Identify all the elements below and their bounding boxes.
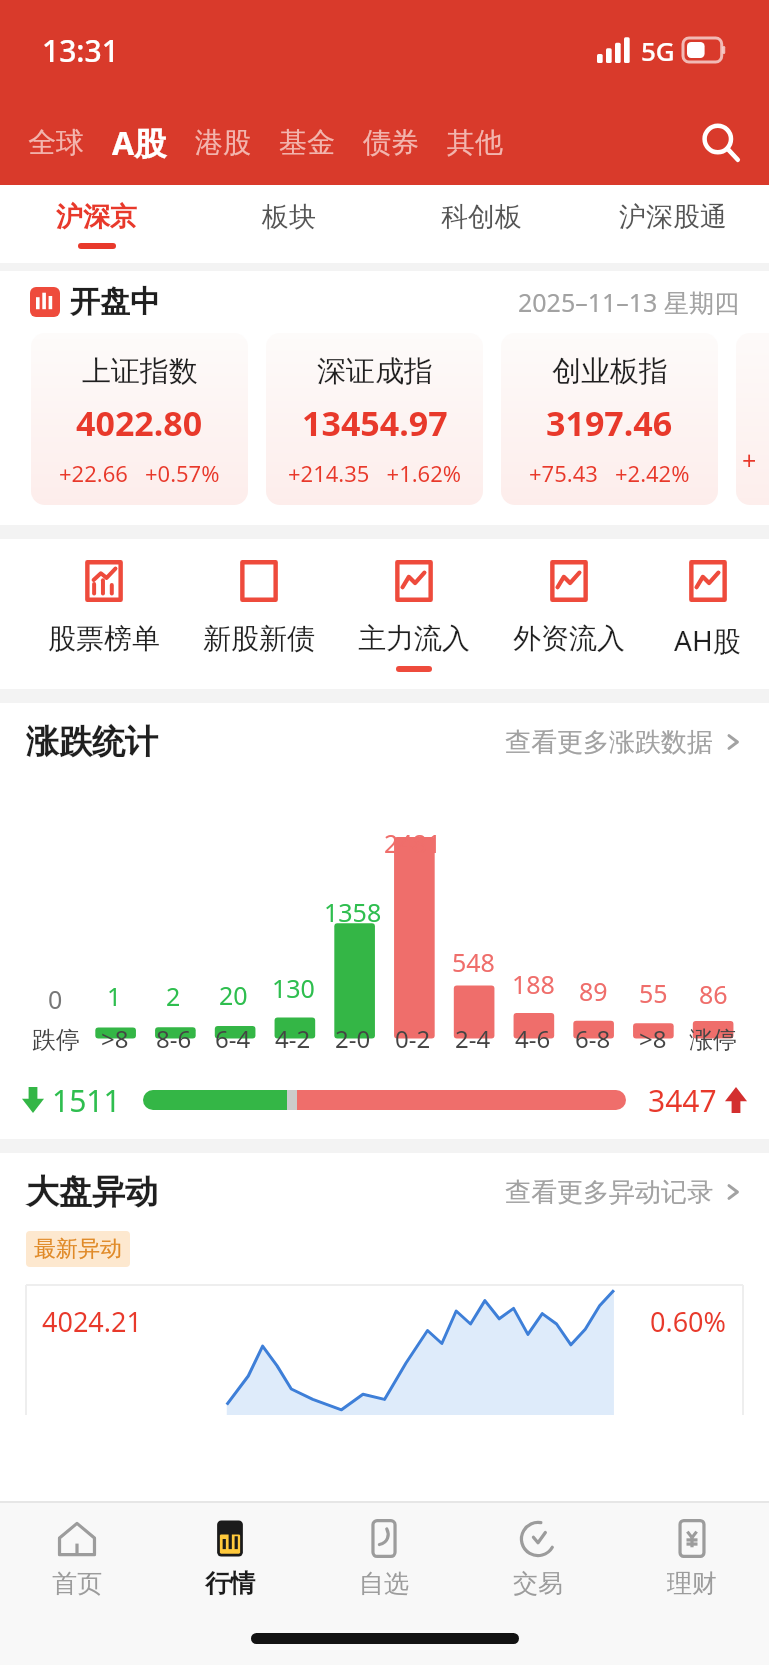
staticText: 4022.80 <box>76 400 203 446</box>
button[interactable]: 沪深股通 <box>577 185 769 263</box>
staticText: 130 <box>272 971 315 1005</box>
button[interactable]: 深证成指 <box>266 333 483 505</box>
staticText: 86 <box>699 977 728 1011</box>
button[interactable]: 科创板 <box>385 185 577 263</box>
staticText: 13:31 <box>42 30 119 71</box>
staticText: 4-2 <box>275 1022 311 1055</box>
staticText: 沪深股通 <box>619 200 727 234</box>
staticText: 外资流入 <box>513 621 625 656</box>
staticText: 查看更多异动记录 <box>505 1176 713 1209</box>
button[interactable]: 板块 <box>193 185 385 263</box>
staticText: 理财 <box>667 1568 717 1599</box>
button[interactable]: 自选 <box>307 1503 461 1611</box>
staticText: 1358 <box>324 895 382 929</box>
staticText: + <box>742 443 757 477</box>
staticText: +214.35 +1.62% <box>288 458 462 488</box>
staticText: 自选 <box>359 1568 409 1599</box>
button[interactable]: 上证指数 <box>31 333 248 505</box>
staticText: 板块 <box>262 200 316 234</box>
staticText: 4-6 <box>515 1022 551 1055</box>
staticText: 0 <box>48 982 63 1016</box>
button[interactable]: 行情 <box>153 1503 307 1611</box>
staticText: 基金 <box>279 125 335 160</box>
button[interactable]: 沪深京 <box>0 185 193 263</box>
staticText: 大盘异动 <box>26 1171 158 1213</box>
staticText: 跌停 <box>32 1025 80 1055</box>
staticText: 2-0 <box>335 1022 371 1055</box>
staticText: A股 <box>112 121 167 165</box>
button[interactable]: 主力流入 <box>336 555 491 672</box>
button[interactable]: 理财 <box>615 1503 769 1611</box>
staticText: 4024.21 <box>42 1303 142 1340</box>
button[interactable]: 港股 <box>181 119 265 166</box>
staticText: 债券 <box>363 125 419 160</box>
staticText: 创业板指 <box>552 353 668 390</box>
staticText: AH股 <box>674 621 741 659</box>
button[interactable]: 股票榜单 <box>26 555 181 656</box>
staticText: 0-2 <box>395 1022 431 1055</box>
button[interactable]: AH股 <box>646 555 769 659</box>
staticText: 交易 <box>513 1568 563 1599</box>
staticText: 2 <box>166 979 181 1013</box>
staticText: 首页 <box>52 1568 102 1599</box>
staticText: 其他 <box>447 125 503 160</box>
staticText: 55 <box>639 976 668 1010</box>
staticText: 上证指数 <box>82 353 198 390</box>
staticText: 2-4 <box>455 1022 491 1055</box>
button[interactable]: 大盘异动 <box>26 1153 743 1231</box>
staticText: 6-8 <box>575 1022 611 1055</box>
button[interactable]: 债券 <box>349 119 433 166</box>
button[interactable]: + <box>736 333 769 505</box>
button[interactable]: 创业板指 <box>501 333 718 505</box>
staticText: 主力流入 <box>358 621 470 656</box>
staticText: >8 <box>101 1022 129 1055</box>
staticText: +22.66 +0.57% <box>59 458 220 488</box>
staticText: 6-4 <box>215 1022 251 1055</box>
staticText: 1 <box>107 979 122 1013</box>
staticText: 最新异动 <box>34 1235 122 1263</box>
button[interactable]: 交易 <box>461 1503 615 1611</box>
button[interactable]: 首页 <box>0 1503 153 1611</box>
staticText: 89 <box>579 974 608 1008</box>
button[interactable]: 搜索 <box>693 115 749 171</box>
staticText: 13454.97 <box>302 400 448 446</box>
staticText: 188 <box>512 967 555 1001</box>
staticText: 深证成指 <box>317 353 433 390</box>
staticText: 0.60% <box>650 1303 727 1340</box>
staticText: 开盘中 <box>70 283 160 321</box>
staticText: 沪深京 <box>56 200 137 234</box>
staticText: 548 <box>452 945 495 979</box>
button[interactable]: 4024.21 <box>26 1285 743 1415</box>
staticText: >8 <box>639 1022 667 1055</box>
button[interactable]: 外资流入 <box>491 555 646 656</box>
staticText: 2481 <box>384 826 442 860</box>
button[interactable]: 涨跌统计 <box>26 703 743 781</box>
staticText: 20 <box>219 978 248 1012</box>
staticText: 新股新债 <box>203 621 315 656</box>
staticText: 2025–11–13 星期四 <box>518 285 739 319</box>
staticText: 涨跌统计 <box>26 721 158 763</box>
staticText: 股票榜单 <box>48 621 160 656</box>
staticText: 查看更多涨跌数据 <box>505 726 713 759</box>
button[interactable]: A股 <box>98 115 181 171</box>
button[interactable]: 全球 <box>14 119 98 166</box>
staticText: 8-6 <box>156 1022 192 1055</box>
staticText: +75.43 +2.42% <box>529 458 690 488</box>
button[interactable]: 其他 <box>433 119 517 166</box>
button[interactable]: 基金 <box>265 119 349 166</box>
staticText: 涨停 <box>689 1025 737 1055</box>
staticText: 3447 <box>648 1080 717 1121</box>
staticText: 全球 <box>28 125 84 160</box>
staticText: 港股 <box>195 125 251 160</box>
staticText: 3197.46 <box>546 400 673 446</box>
staticText: 行情 <box>205 1568 255 1599</box>
staticText: 1511 <box>52 1080 121 1121</box>
staticText: 科创板 <box>441 200 522 234</box>
button[interactable]: 新股新债 <box>181 555 336 656</box>
staticText: 5G <box>641 33 675 68</box>
